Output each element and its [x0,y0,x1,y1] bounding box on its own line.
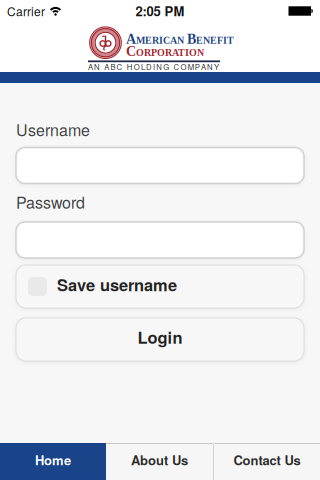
staticText: AN ABC HOLDING COMPANY [88,61,219,72]
button[interactable]: Save username [0,265,320,308]
staticText: 2:05 PM [135,2,184,20]
staticText: Save username [57,273,177,296]
staticText: Carrier [7,2,45,20]
button[interactable]: About Us [106,443,213,480]
staticText: Login [137,325,182,349]
staticText: Password [16,190,85,213]
button[interactable]: Contact Us [214,443,320,480]
staticText: About Us [131,451,188,469]
button[interactable]: Password text field [0,222,320,258]
button[interactable]: Home [0,443,106,480]
staticText: Username [16,118,90,141]
staticText: Contact Us [233,451,300,469]
button[interactable]: Username text field [0,147,320,183]
staticText: AMERICAN BENEFIT [126,31,234,46]
staticText: CORPORATION [126,44,204,59]
staticText: Home [35,451,71,469]
button[interactable]: Login [0,318,320,361]
